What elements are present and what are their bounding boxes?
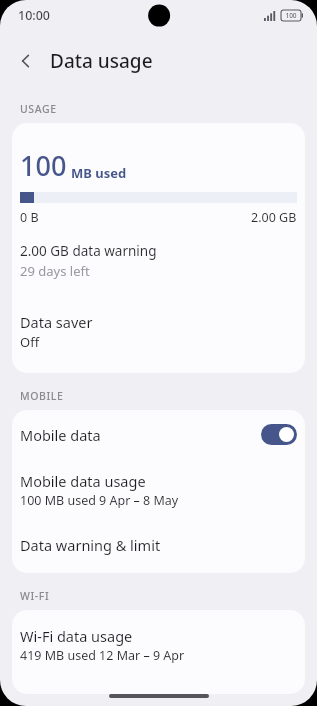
- staticText: 100 MB used 9 Apr – 8 May: [20, 492, 179, 509]
- button[interactable]: Wi-Fi data usage: [12, 626, 305, 664]
- staticText: 10:00: [18, 7, 51, 24]
- staticText: 0 B: [20, 209, 39, 226]
- button[interactable]: 2.00 GB data warning: [12, 242, 305, 280]
- staticText: Data usage: [50, 48, 153, 74]
- staticText: Mobile data: [20, 425, 101, 445]
- staticText: MB used: [71, 164, 127, 182]
- staticText: Off: [20, 333, 40, 351]
- button[interactable]: Data warning & limit: [12, 535, 305, 555]
- staticText: 419 MB used 12 Mar – 9 Apr: [20, 647, 185, 664]
- button[interactable]: Back: [8, 43, 44, 79]
- staticText: 100: [285, 11, 297, 20]
- staticText: Data saver: [20, 312, 93, 332]
- button[interactable]: Data saver: [12, 312, 305, 351]
- staticText: MOBILE: [20, 389, 64, 403]
- staticText: Mobile data usage: [20, 471, 146, 491]
- staticText: 2.00 GB data warning: [20, 242, 157, 260]
- button[interactable]: Mobile data usage: [12, 471, 305, 509]
- button[interactable]: Mobile data: [12, 424, 305, 445]
- staticText: 2.00 GB: [251, 209, 297, 226]
- staticText: USAGE: [20, 102, 57, 116]
- staticText: WI-FI: [20, 589, 50, 603]
- button[interactable]: Mobile data toggle: [261, 424, 297, 445]
- staticText: 100: [20, 147, 67, 184]
- staticText: Data warning & limit: [20, 535, 161, 555]
- staticText: Wi-Fi data usage: [20, 626, 133, 646]
- staticText: 29 days left: [20, 262, 90, 280]
